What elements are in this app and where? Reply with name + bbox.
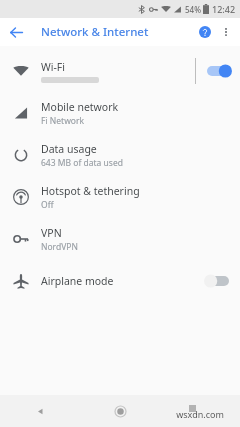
button[interactable]: Back — [0, 395, 80, 427]
button[interactable]: Back — [5, 21, 27, 43]
staticText: Wi-Fi — [41, 60, 66, 74]
button[interactable]: Help — [194, 21, 216, 43]
staticText: Off — [41, 199, 54, 211]
button[interactable]: Airplane mode — [196, 260, 240, 302]
button[interactable]: Recents — [160, 395, 240, 427]
staticText: 643 MB of data used — [41, 157, 123, 169]
button[interactable]: Data usage — [0, 134, 240, 176]
button[interactable]: Turn off Wi-Fi — [196, 50, 240, 92]
staticText: 12:42 — [212, 3, 236, 15]
button[interactable]: Home — [80, 395, 160, 427]
staticText: Airplane mode — [41, 274, 114, 288]
button[interactable]: Wi-Fi — [0, 50, 240, 92]
staticText: Network & Internet — [41, 24, 149, 40]
staticText: Mobile network — [41, 100, 119, 114]
staticText: Data usage — [41, 142, 97, 156]
button[interactable]: Airplane mode — [0, 260, 240, 302]
button[interactable]: Hotspot & tethering — [0, 176, 240, 218]
staticText: VPN — [41, 226, 62, 240]
button[interactable]: Mobile network — [0, 92, 240, 134]
staticText: 54% — [185, 4, 201, 15]
staticText: NordVPN — [41, 241, 78, 253]
staticText: Hotspot & tethering — [41, 184, 140, 198]
staticText: wsxdn.com — [176, 408, 224, 420]
button[interactable]: VPN — [0, 218, 240, 260]
button[interactable]: More options — [216, 22, 236, 42]
staticText: Fi Network — [41, 115, 85, 127]
